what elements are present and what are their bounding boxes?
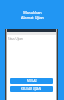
button[interactable]: KELUAR UJIAN	[10, 86, 53, 92]
staticText: Alamat Ujian	[21, 15, 44, 20]
staticText: Situs Ujian	[8, 37, 23, 41]
staticText: Masukkan	[23, 10, 42, 15]
button[interactable]: MULAI	[10, 78, 53, 84]
staticText: KELUAR UJIAN	[21, 87, 42, 91]
staticText: MULAI	[27, 79, 37, 83]
